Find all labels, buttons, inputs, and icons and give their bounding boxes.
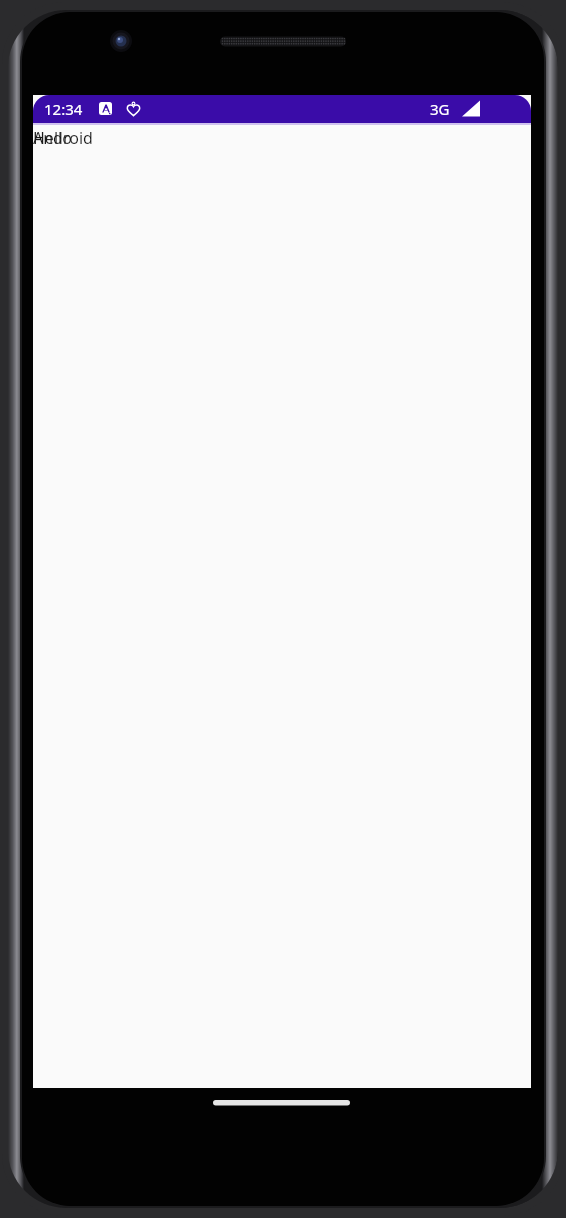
staticText: 3G [430, 99, 450, 119]
button[interactable]: Android [33, 127, 93, 149]
button[interactable]: Status bar [33, 95, 531, 123]
staticText: Hello [33, 127, 72, 149]
staticText: 12:34 [44, 99, 83, 119]
staticText: Android [33, 127, 93, 149]
